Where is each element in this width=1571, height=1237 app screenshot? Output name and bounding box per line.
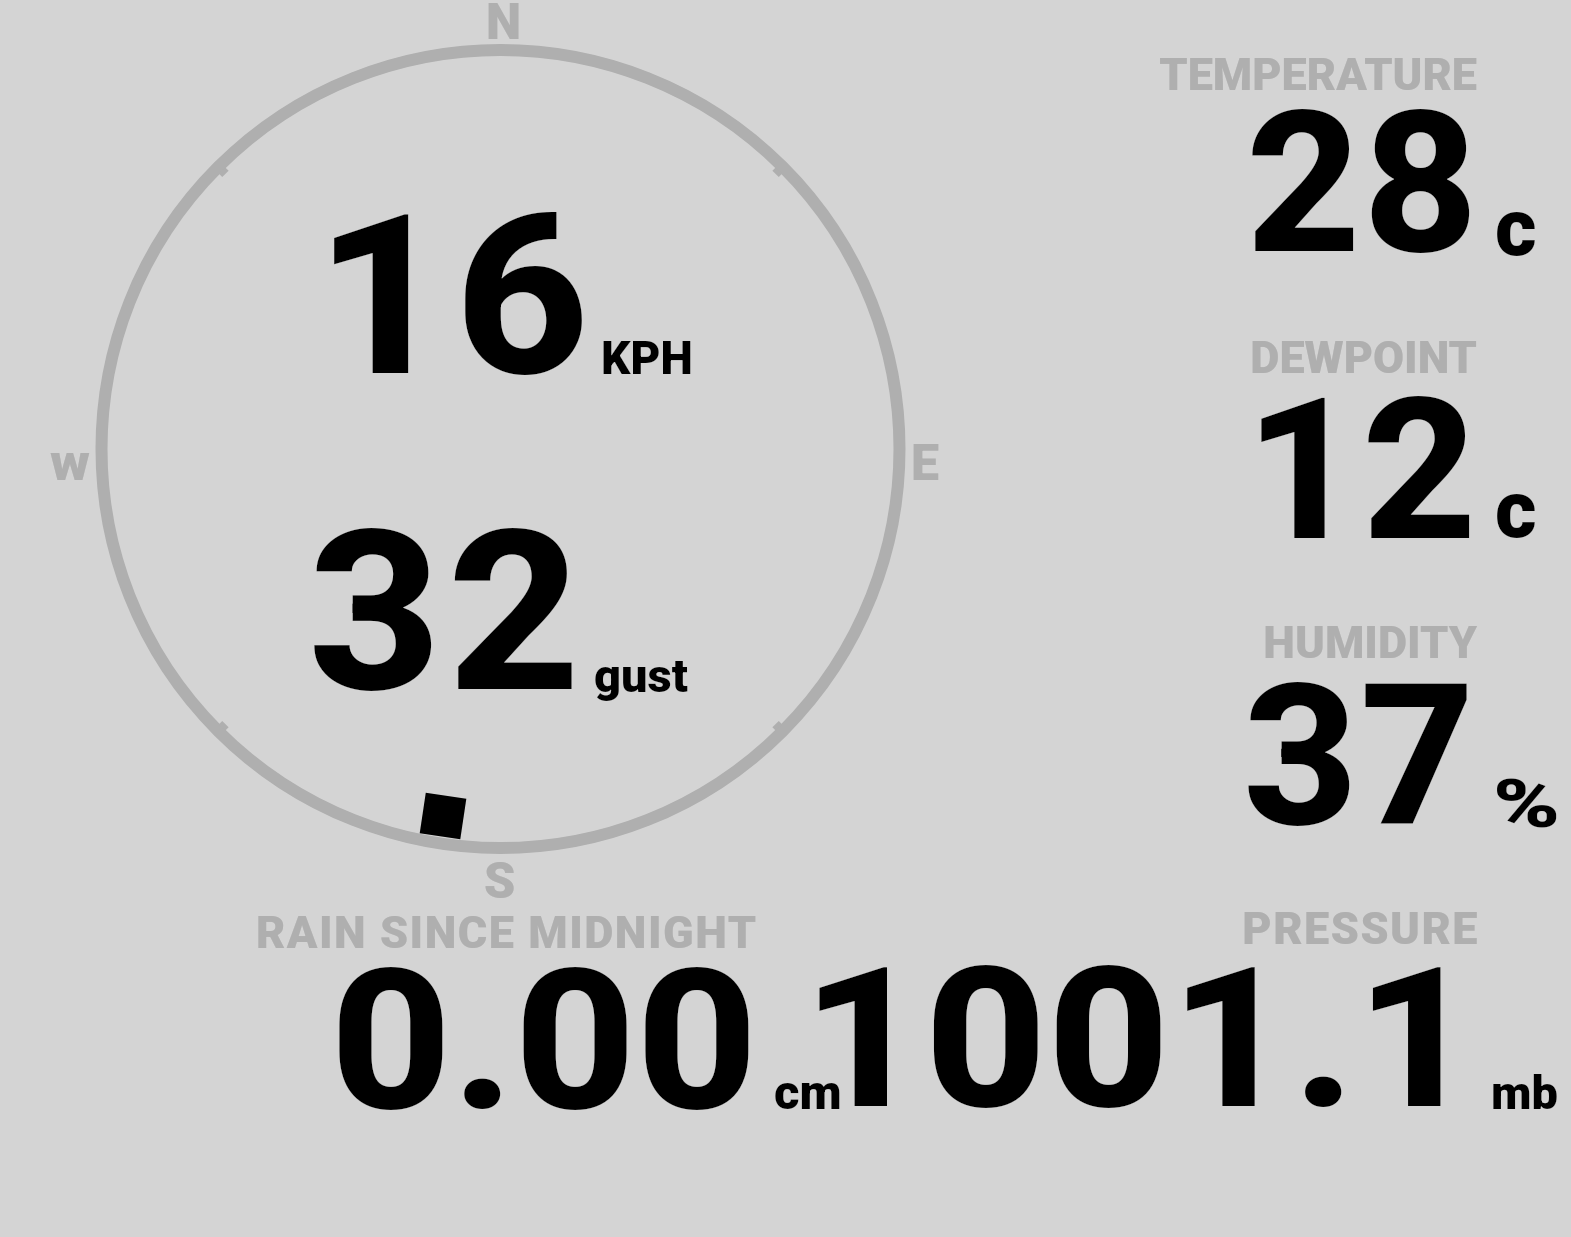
staticText: DEWPOINT — [577, 331, 1477, 384]
staticText: TEMPERATURE — [577, 48, 1477, 101]
staticText: RAIN SINCE MIDNIGHT — [256, 906, 758, 959]
staticText: 32 — [308, 483, 588, 743]
staticText: 12 — [1245, 356, 1480, 586]
staticText: c — [1495, 181, 1537, 275]
staticText: S — [484, 852, 516, 911]
staticText: gust — [594, 648, 688, 703]
button[interactable]: Humidity 37 percent — [1090, 610, 1560, 840]
staticText: 0.00 — [330, 928, 759, 1155]
button[interactable]: Pressure 1001.1 mb — [870, 900, 1560, 1120]
staticText: N — [486, 0, 522, 52]
button[interactable]: Rain since midnight 0.00 cm — [240, 900, 860, 1120]
staticText: w — [50, 434, 91, 493]
staticText: KPH — [601, 331, 693, 385]
staticText: HUMIDITY — [577, 616, 1477, 669]
button[interactable]: Dewpoint 12 c — [1090, 325, 1560, 555]
staticText: cm — [774, 1064, 842, 1121]
staticText: 16 — [315, 167, 595, 427]
staticText: 28 — [1246, 69, 1481, 299]
staticText: 1001.1 — [802, 926, 1478, 1153]
staticText: E — [911, 434, 939, 493]
staticText: % — [1493, 766, 1561, 843]
staticText: PRESSURE — [579, 902, 1479, 955]
staticText: mb — [1491, 1065, 1558, 1120]
staticText: c — [1495, 463, 1537, 557]
button[interactable]: Wind 16 KPH gusting 32, direction south — [80, 28, 920, 873]
button[interactable]: Temperature 28 c — [1090, 40, 1560, 270]
staticText: 37 — [1243, 642, 1478, 872]
